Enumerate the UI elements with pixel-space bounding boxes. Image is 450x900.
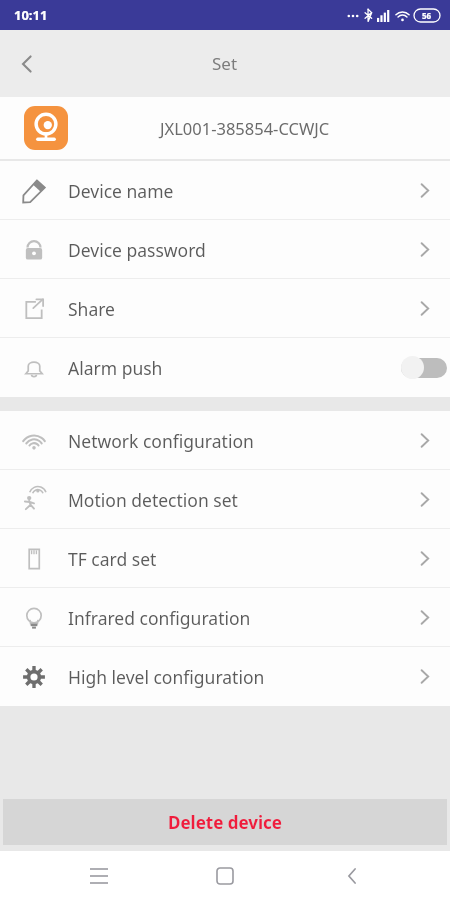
button[interactable]: JXL001-385854-CCWJC xyxy=(0,97,450,159)
button[interactable]: Delete device xyxy=(3,799,447,845)
staticText: Device name xyxy=(68,179,398,203)
staticText: High level configuration xyxy=(68,665,398,689)
staticText: Delete device xyxy=(168,811,283,834)
button[interactable]: Recent apps xyxy=(71,851,127,900)
staticText: JXL001-385854-CCWJC xyxy=(160,117,330,139)
staticText: TF card set xyxy=(68,547,398,571)
button[interactable]: Share xyxy=(0,279,450,338)
button[interactable]: Back xyxy=(0,37,54,91)
staticText: 56 xyxy=(422,10,432,21)
staticText: Infrared configuration xyxy=(68,606,398,630)
button[interactable]: Infrared configuration xyxy=(0,588,450,647)
button[interactable]: Home xyxy=(197,851,253,900)
staticText: 10:11 xyxy=(14,6,48,24)
button[interactable]: High level configuration xyxy=(0,647,450,706)
staticText: Network configuration xyxy=(68,429,398,453)
staticText: Device password xyxy=(68,238,398,262)
button[interactable]: TF card set xyxy=(0,529,450,588)
button[interactable]: Motion detection set xyxy=(0,470,450,529)
staticText: Set xyxy=(212,52,238,75)
button[interactable]: Device password xyxy=(0,220,450,279)
button[interactable]: Alarm push xyxy=(0,338,450,397)
button[interactable]: Back xyxy=(324,851,380,900)
staticText: Share xyxy=(68,297,398,321)
staticText: Motion detection set xyxy=(68,488,398,512)
button[interactable]: Device name xyxy=(0,161,450,220)
button[interactable]: Network configuration xyxy=(0,411,450,470)
staticText: Alarm push xyxy=(68,356,398,380)
